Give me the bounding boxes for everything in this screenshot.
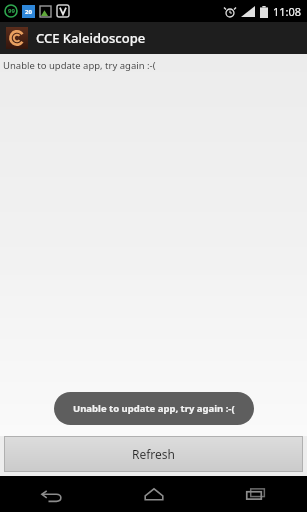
button[interactable]: Unable to update app, try again :-( bbox=[54, 392, 254, 425]
button[interactable]: Back bbox=[0, 476, 103, 512]
staticText: CCE Kaleidoscope bbox=[36, 29, 146, 47]
staticText: Refresh bbox=[132, 446, 176, 462]
staticText: 20 bbox=[25, 8, 32, 16]
button[interactable]: Recent apps bbox=[205, 476, 307, 512]
staticText: 11:08 bbox=[273, 4, 302, 19]
staticText: Unable to update app, try again :-( bbox=[73, 402, 235, 415]
staticText: Unable to update app, try again :-( bbox=[3, 59, 156, 72]
button[interactable]: Refresh bbox=[5, 437, 302, 471]
staticText: 99 bbox=[8, 7, 15, 15]
button[interactable]: Home bbox=[103, 476, 205, 512]
button[interactable]: CCE Kaleidoscope bbox=[0, 22, 307, 54]
